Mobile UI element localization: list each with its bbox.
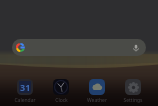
- button[interactable]: Weather: [80, 79, 114, 104]
- staticText: Weather: [87, 97, 107, 104]
- staticText: Settings: [123, 97, 143, 104]
- staticText: 31: [20, 81, 31, 93]
- staticText: Calendar: [14, 97, 36, 104]
- staticText: Clock: [55, 97, 68, 104]
- button[interactable]: Clock: [44, 79, 78, 104]
- button[interactable]: 31: [8, 79, 42, 104]
- button[interactable]: Voice search: [130, 42, 141, 53]
- button[interactable]: Voice search: [12, 39, 146, 56]
- button[interactable]: Settings: [116, 79, 150, 104]
